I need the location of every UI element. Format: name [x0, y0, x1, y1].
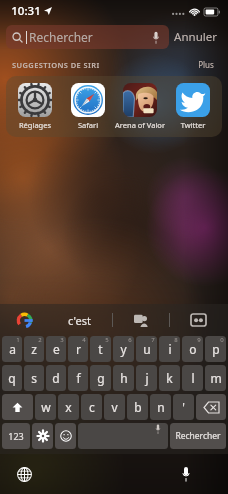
staticText: k: [166, 370, 173, 386]
button[interactable]: p: [205, 336, 226, 362]
staticText: Annuler: [174, 29, 217, 45]
staticText: v: [111, 399, 118, 415]
other: Espace: [78, 423, 168, 449]
button[interactable]: Autocollants: [113, 304, 169, 336]
button[interactable]: c'est: [46, 304, 112, 336]
staticText: c'est: [68, 313, 91, 328]
staticText: d: [52, 370, 60, 386]
button[interactable]: x: [58, 394, 79, 420]
staticText: u: [143, 341, 151, 357]
button[interactable]: Safari: [63, 83, 113, 130]
button[interactable]: Rechercher: [170, 423, 226, 449]
button[interactable]: Réglages: [10, 83, 60, 130]
staticText: 5: [105, 336, 109, 344]
button[interactable]: Supprimer: [196, 394, 226, 420]
button[interactable]: r: [68, 336, 88, 362]
staticText: 9: [197, 336, 201, 344]
staticText: w: [41, 399, 51, 415]
staticText: Plus: [198, 59, 214, 70]
staticText: y: [120, 341, 127, 357]
button[interactable]: v: [104, 394, 125, 420]
button[interactable]: Recherche vocale: [174, 462, 198, 486]
staticText: n: [157, 399, 165, 415]
staticText: 123: [8, 430, 24, 442]
button[interactable]: Changer de langue: [12, 462, 36, 486]
button[interactable]: Google: [2, 304, 46, 336]
other: Paramètres: [32, 423, 53, 449]
staticText: Twitter: [168, 120, 218, 130]
staticText: a: [9, 341, 16, 357]
button[interactable]: y: [113, 336, 134, 362]
button[interactable]: d: [46, 365, 66, 391]
staticText: Réglages: [10, 120, 60, 130]
staticText: 2: [38, 336, 42, 344]
button[interactable]: o: [182, 336, 203, 362]
button[interactable]: e: [46, 336, 66, 362]
staticText: s: [31, 370, 37, 386]
button[interactable]: Paramètres: [32, 423, 53, 449]
staticText: h: [120, 370, 128, 386]
staticText: 0: [220, 336, 224, 344]
staticText: i: [168, 341, 172, 357]
staticText: c: [89, 399, 95, 415]
button[interactable]: Arena of Valor: [115, 83, 165, 130]
staticText: e: [53, 341, 60, 357]
staticText: ': [182, 399, 185, 415]
button[interactable]: n: [150, 394, 171, 420]
button[interactable]: Dictée vocale: [149, 30, 163, 44]
staticText: p: [212, 341, 220, 357]
button[interactable]: 123: [2, 423, 30, 449]
staticText: r: [76, 341, 81, 357]
staticText: g: [97, 370, 105, 386]
staticText: b: [134, 399, 142, 415]
staticText: Rechercher: [175, 430, 221, 442]
button[interactable]: Rechercher: [6, 25, 169, 49]
button[interactable]: Plus: [196, 57, 216, 72]
button[interactable]: z: [24, 336, 44, 362]
button[interactable]: c: [81, 394, 102, 420]
button[interactable]: g: [90, 365, 111, 391]
button[interactable]: GIF: [170, 304, 226, 336]
button[interactable]: q: [2, 365, 22, 391]
staticText: x: [65, 399, 72, 415]
staticText: 3: [60, 336, 64, 344]
button[interactable]: j: [136, 365, 157, 391]
staticText: 7: [151, 336, 155, 344]
button[interactable]: Espace: [78, 423, 168, 449]
button[interactable]: b: [127, 394, 148, 420]
button[interactable]: k: [159, 365, 180, 391]
staticText: z: [31, 341, 37, 357]
button[interactable]: Emoji: [55, 423, 76, 449]
staticText: o: [189, 341, 197, 357]
staticText: m: [210, 370, 222, 386]
button[interactable]: t: [90, 336, 111, 362]
button[interactable]: l: [182, 365, 203, 391]
button[interactable]: i: [159, 336, 180, 362]
staticText: t: [98, 341, 103, 357]
button[interactable]: u: [136, 336, 157, 362]
button[interactable]: s: [24, 365, 44, 391]
staticText: j: [145, 370, 149, 386]
button[interactable]: ': [173, 394, 194, 420]
other: Supprimer: [196, 394, 226, 420]
staticText: l: [191, 370, 195, 386]
button[interactable]: h: [113, 365, 134, 391]
staticText: q: [8, 370, 16, 386]
staticText: 8: [174, 336, 178, 344]
button[interactable]: Majuscule: [2, 394, 33, 420]
staticText: 1: [16, 336, 20, 344]
button[interactable]: Annuler: [169, 25, 222, 49]
button[interactable]: a: [2, 336, 22, 362]
staticText: Rechercher: [29, 29, 149, 45]
staticText: 6: [128, 336, 132, 344]
staticText: Arena of Valor: [115, 120, 165, 130]
button[interactable]: w: [35, 394, 56, 420]
staticText: f: [76, 370, 81, 386]
button[interactable]: Twitter: [168, 83, 218, 130]
other: Emoji: [55, 423, 76, 449]
button[interactable]: m: [205, 365, 226, 391]
staticText: SUGGESTIONS DE SIRI: [12, 60, 100, 70]
staticText: 10:31: [11, 3, 41, 19]
staticText: Safari: [63, 120, 113, 130]
button[interactable]: f: [68, 365, 88, 391]
